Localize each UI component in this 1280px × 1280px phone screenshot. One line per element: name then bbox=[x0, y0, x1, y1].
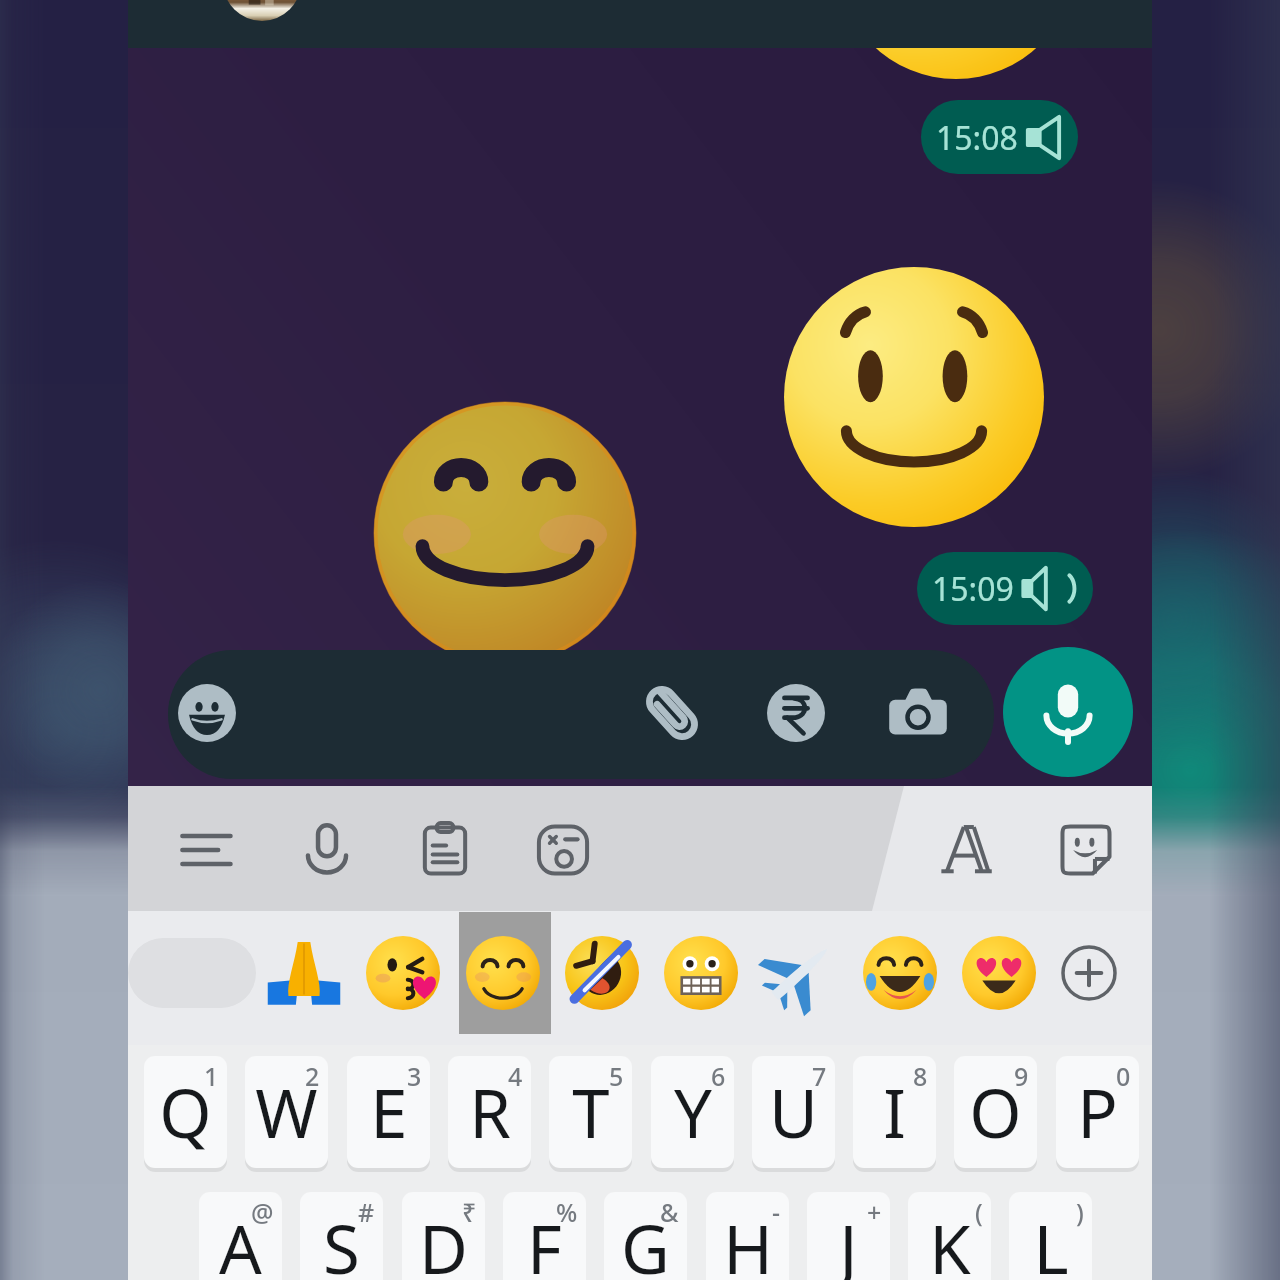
button[interactable]: Emoji 6 bbox=[760, 933, 840, 1013]
button[interactable]: Q bbox=[144, 1056, 227, 1168]
staticText: ( bbox=[975, 1195, 983, 1229]
staticText: + bbox=[867, 1195, 882, 1229]
staticText: 2 bbox=[305, 1059, 320, 1093]
staticText: 6 bbox=[711, 1059, 726, 1093]
staticText: J bbox=[839, 1202, 858, 1280]
staticText: P bbox=[1077, 1066, 1118, 1157]
staticText: 1 bbox=[204, 1059, 219, 1093]
staticText: 5 bbox=[609, 1059, 624, 1093]
button[interactable]: Menu bbox=[173, 816, 241, 884]
staticText: 7 bbox=[812, 1059, 827, 1093]
staticText: O bbox=[969, 1066, 1022, 1157]
button[interactable]: Settings bbox=[529, 816, 597, 884]
staticText: G bbox=[621, 1202, 670, 1280]
button[interactable]: Text style bbox=[932, 816, 1000, 884]
staticText: W bbox=[255, 1066, 318, 1157]
button[interactable]: H bbox=[706, 1192, 789, 1280]
staticText: Y bbox=[674, 1066, 712, 1157]
button[interactable]: A bbox=[199, 1192, 282, 1280]
button[interactable]: O bbox=[954, 1056, 1037, 1168]
staticText: H bbox=[723, 1202, 773, 1280]
button[interactable]: E bbox=[347, 1056, 430, 1168]
button[interactable]: 15:08 bbox=[921, 100, 1078, 174]
button[interactable]: F bbox=[503, 1192, 586, 1280]
staticText: S bbox=[323, 1202, 360, 1280]
button[interactable] bbox=[168, 650, 994, 779]
button[interactable]: Emoji 8 bbox=[959, 933, 1039, 1013]
button[interactable]: L bbox=[1009, 1192, 1092, 1280]
staticText: A bbox=[219, 1202, 262, 1280]
staticText: R bbox=[469, 1066, 511, 1157]
staticText: 0 bbox=[1116, 1059, 1131, 1093]
staticText: 8 bbox=[913, 1059, 928, 1093]
button[interactable]: I bbox=[853, 1056, 936, 1168]
staticText: ) bbox=[1076, 1195, 1084, 1229]
staticText: - bbox=[772, 1195, 781, 1229]
button[interactable]: More emoji bbox=[1053, 937, 1125, 1009]
staticText: D bbox=[419, 1202, 468, 1280]
staticText: % bbox=[556, 1195, 578, 1229]
button[interactable]: Record voice message bbox=[1003, 647, 1133, 777]
button[interactable]: Emoji 1 bbox=[264, 933, 344, 1013]
button[interactable]: Voice input bbox=[293, 816, 361, 884]
staticText: 9 bbox=[1014, 1059, 1029, 1093]
button[interactable]: Emoji 2 bbox=[363, 933, 443, 1013]
staticText: 3 bbox=[407, 1059, 422, 1093]
button[interactable]: Emoji 7 bbox=[860, 933, 940, 1013]
button[interactable]: Attach bbox=[636, 677, 708, 749]
staticText: U bbox=[769, 1066, 818, 1157]
staticText: 4 bbox=[508, 1059, 523, 1093]
button[interactable]: K bbox=[908, 1192, 991, 1280]
staticText: L bbox=[1033, 1202, 1069, 1280]
staticText: 15:09 bbox=[932, 567, 1014, 611]
staticText: Q bbox=[159, 1066, 212, 1157]
button[interactable]: T bbox=[549, 1056, 632, 1168]
staticText: T bbox=[572, 1066, 610, 1157]
button[interactable]: J bbox=[807, 1192, 890, 1280]
staticText: @ bbox=[251, 1195, 274, 1229]
staticText: ₹ bbox=[462, 1195, 477, 1229]
staticText: I bbox=[883, 1066, 906, 1157]
staticText: & bbox=[660, 1195, 679, 1229]
staticText: F bbox=[527, 1202, 562, 1280]
button[interactable]: Clipboard bbox=[411, 816, 479, 884]
staticText: # bbox=[358, 1195, 375, 1229]
button[interactable]: Emoji 3 bbox=[463, 933, 543, 1013]
button[interactable]: Emoji 5 bbox=[661, 933, 741, 1013]
button[interactable]: Camera bbox=[884, 679, 952, 747]
button[interactable]: P bbox=[1056, 1056, 1139, 1168]
button[interactable]: S bbox=[300, 1192, 383, 1280]
staticText: K bbox=[929, 1202, 971, 1280]
button[interactable]: Stickers bbox=[1052, 816, 1120, 884]
button[interactable]: D bbox=[402, 1192, 485, 1280]
button[interactable]: G bbox=[604, 1192, 687, 1280]
staticText: E bbox=[370, 1066, 408, 1157]
button[interactable]: U bbox=[752, 1056, 835, 1168]
button[interactable]: Emoji bbox=[173, 679, 241, 747]
button[interactable]: Payment bbox=[762, 679, 830, 747]
button[interactable]: Y bbox=[651, 1056, 734, 1168]
button[interactable]: R bbox=[448, 1056, 531, 1168]
button[interactable]: Emoji 4 bbox=[562, 933, 642, 1013]
button[interactable]: W bbox=[245, 1056, 328, 1168]
button[interactable]: 15:09 bbox=[917, 552, 1093, 625]
staticText: 15:08 bbox=[936, 116, 1018, 160]
